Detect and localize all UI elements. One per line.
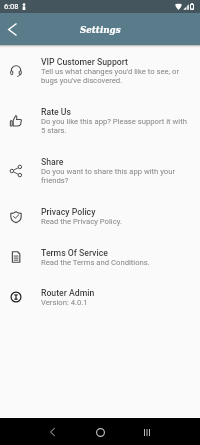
button[interactable]: Router Admin bbox=[0, 277, 200, 317]
button[interactable]: Rate Us bbox=[0, 96, 200, 146]
staticText: Read the Terms and Conditions. bbox=[41, 258, 150, 267]
staticText: Settings bbox=[80, 24, 121, 35]
staticText: Do you like this app? Please support it … bbox=[41, 117, 191, 135]
staticText: VIP Customer Support bbox=[41, 57, 128, 67]
staticText: Do you want to share this app with your … bbox=[41, 167, 191, 185]
staticText: Version: 4.0.1 bbox=[41, 298, 88, 307]
button[interactable]: Home bbox=[91, 423, 109, 441]
staticText: Share bbox=[41, 157, 64, 167]
staticText: Privacy Policy bbox=[41, 207, 96, 217]
button[interactable]: Share bbox=[0, 146, 200, 196]
staticText: 6:08 bbox=[4, 2, 19, 11]
button[interactable]: Back bbox=[2, 19, 22, 39]
button[interactable]: VIP Customer Support bbox=[0, 46, 200, 96]
staticText: Tell us what changes you'd like to see, … bbox=[41, 67, 191, 85]
button[interactable]: Recent apps bbox=[138, 423, 156, 441]
button[interactable]: Back bbox=[43, 423, 61, 441]
staticText: Router Admin bbox=[41, 288, 95, 298]
staticText: Terms Of Service bbox=[41, 248, 108, 258]
button[interactable]: Privacy Policy bbox=[0, 196, 200, 237]
button[interactable]: Terms Of Service bbox=[0, 237, 200, 277]
staticText: Read the Privacy Policy. bbox=[41, 217, 122, 226]
staticText: Rate Us bbox=[41, 107, 72, 117]
